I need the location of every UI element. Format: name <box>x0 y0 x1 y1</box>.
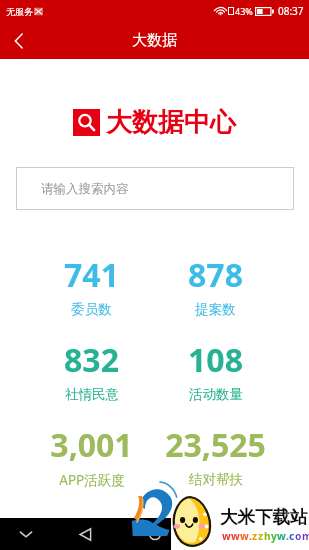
button[interactable]: 741 <box>21 253 161 318</box>
button[interactable]: Back <box>2 24 36 58</box>
staticText: 提案数 <box>195 301 236 318</box>
button[interactable]: 请输入搜索内容 <box>16 167 294 210</box>
button[interactable]: 3,001 <box>21 423 161 489</box>
staticText: 结对帮扶 <box>189 471 243 488</box>
staticText: 43% <box>235 5 253 17</box>
staticText: w <box>240 529 249 543</box>
staticText: 大米下载站 <box>220 506 308 528</box>
staticText: 3,001 <box>50 423 133 467</box>
staticText: c <box>289 529 295 543</box>
staticText: 832 <box>64 338 119 382</box>
staticText: 23,525 <box>165 423 266 467</box>
staticText: o <box>295 529 302 543</box>
staticText: w <box>277 529 286 543</box>
staticText: APP活跃度 <box>59 471 125 489</box>
staticText: 108 <box>188 338 243 382</box>
button[interactable]: 878 <box>145 253 285 318</box>
staticText: 741 <box>64 253 119 297</box>
staticText: z <box>252 529 258 543</box>
button[interactable]: Back <box>71 520 99 548</box>
staticText: y <box>271 529 277 543</box>
button[interactable]: Hide keyboard <box>12 520 40 548</box>
staticText: z <box>258 529 264 543</box>
staticText: 大数据 <box>132 31 177 50</box>
button[interactable]: 23,525 <box>145 423 285 488</box>
staticText: 无服务 <box>6 6 33 17</box>
staticText: w <box>222 529 231 543</box>
staticText: 大数据中心 <box>106 106 236 139</box>
staticText: m <box>302 529 309 543</box>
button[interactable]: 832 <box>21 338 161 403</box>
staticText: 社情民意 <box>65 386 119 403</box>
staticText: 878 <box>188 253 243 297</box>
staticText: 活动数量 <box>189 386 243 403</box>
staticText: 08:37 <box>278 4 304 18</box>
staticText: . <box>286 529 289 543</box>
staticText: h <box>264 529 271 543</box>
button[interactable]: 108 <box>145 338 285 403</box>
staticText: 请输入搜索内容 <box>41 181 129 197</box>
staticText: . <box>249 529 252 543</box>
staticText: w <box>231 529 240 543</box>
button[interactable]: Home <box>141 520 169 548</box>
staticText: 委员数 <box>71 301 112 318</box>
